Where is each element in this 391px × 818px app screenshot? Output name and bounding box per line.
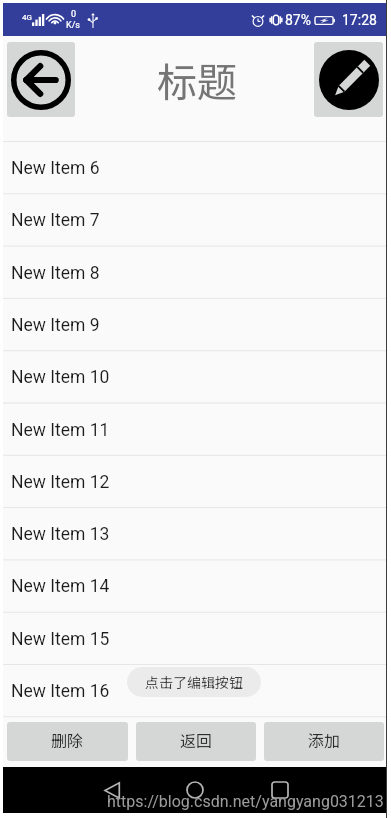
staticText: 0 [71,9,77,20]
staticText: New Item 7 [11,210,100,231]
staticText: New Item 16 [11,681,110,702]
button[interactable]: New Item 6 [3,143,386,194]
button[interactable]: New Item 14 [3,561,386,612]
button[interactable]: New Item 13 [3,509,386,560]
button[interactable]: New Item 15 [3,614,386,665]
staticText: 4G [22,13,32,22]
button[interactable]: Home [178,773,212,807]
button[interactable]: New Item 16 [3,666,386,717]
button[interactable]: Edit [314,42,383,117]
staticText: 返回 [180,728,213,751]
staticText: 添加 [308,728,341,751]
button[interactable]: New Item 10 [3,352,386,403]
staticText: New Item 12 [11,472,110,493]
button[interactable]: Back [7,42,75,117]
button[interactable]: 返回 [136,722,256,761]
staticText: New Item 13 [11,524,110,545]
staticText: New Item 10 [11,367,110,388]
staticText: https://blog.csdn.net/yangyang031213 [107,792,384,811]
staticText: New Item 9 [11,315,100,336]
staticText: 标题 [157,51,237,109]
button[interactable]: New Item 9 [3,300,386,351]
staticText: New Item 14 [11,576,110,597]
staticText: 删除 [51,728,84,751]
staticText: New Item 8 [11,263,100,284]
staticText: 点击了编辑按钮 [145,672,243,692]
button[interactable]: 添加 [264,722,384,761]
button[interactable]: Recent apps [263,773,297,807]
staticText: New Item 11 [11,420,110,441]
button[interactable]: 删除 [7,722,128,761]
button[interactable]: New Item 11 [3,405,386,456]
staticText: New Item 15 [11,629,110,650]
button[interactable]: Back [95,773,129,807]
staticText: 17:28 [342,12,377,28]
button[interactable]: New Item 12 [3,457,386,508]
staticText: New Item 6 [11,158,100,179]
staticText: K/s [66,20,81,31]
staticText: 87% [285,12,311,28]
button[interactable]: New Item 7 [3,195,386,246]
button[interactable]: New Item 8 [3,248,386,299]
